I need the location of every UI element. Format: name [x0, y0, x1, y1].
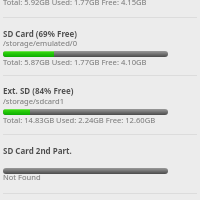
staticText: SD Card 2nd Part.: [3, 145, 72, 156]
staticText: Total: 14.83GB Used: 2.24GB Free: 12.60G…: [3, 115, 156, 125]
staticText: Not Found: [3, 172, 41, 182]
button[interactable]: SD Card 2nd Part.: [0, 135, 200, 193]
staticText: SD Card (69% Free): [3, 28, 78, 39]
staticText: Total: 5.92GB Used: 1.77GB Free: 4.15GB: [3, 0, 147, 7]
staticText: Total: 5.87GB Used: 1.77GB Free: 4.10GB: [3, 57, 147, 67]
staticText: /storage/emulated/0: [3, 38, 77, 48]
staticText: Ext. SD (84% Free): [3, 85, 74, 96]
button[interactable]: SD Card (69% Free): [0, 18, 200, 76]
staticText: /storage/sdcard1: [3, 96, 65, 106]
button[interactable]: Ext. SD (84% Free): [0, 76, 200, 133]
